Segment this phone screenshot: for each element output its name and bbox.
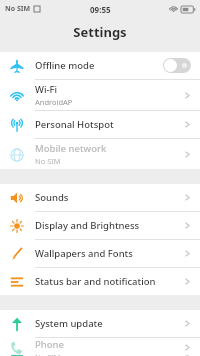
- staticText: Display and Brightness: [35, 219, 140, 232]
- button[interactable]: Personal Hotspot: [0, 111, 200, 139]
- staticText: Sounds: [35, 191, 69, 204]
- staticText: No SIM: [5, 4, 31, 14]
- staticText: Settings: [73, 23, 127, 41]
- staticText: No SIM: [35, 352, 61, 356]
- staticText: Wallpapers and Fonts: [35, 247, 133, 260]
- button[interactable]: System update: [0, 310, 200, 338]
- button[interactable]: Status bar and notification: [0, 268, 200, 295]
- staticText: Mobile network: [35, 142, 107, 155]
- button[interactable]: Sounds: [0, 184, 200, 212]
- staticText: Phone: [35, 338, 64, 351]
- button[interactable]: Wi-Fi: [0, 80, 200, 111]
- button[interactable]: Display and Brightness: [0, 212, 200, 240]
- staticText: System update: [35, 317, 103, 330]
- staticText: Personal Hotspot: [35, 118, 114, 131]
- staticText: 09:55: [90, 4, 111, 15]
- button[interactable]: Phone: [0, 338, 200, 356]
- staticText: Offline mode: [35, 59, 95, 72]
- button[interactable]: Offline mode: [0, 52, 200, 80]
- button[interactable]: Mobile network: [0, 139, 200, 169]
- button[interactable]: Wallpapers and Fonts: [0, 240, 200, 268]
- staticText: Status bar and notification: [35, 275, 156, 288]
- staticText: No SIM: [35, 156, 61, 166]
- staticText: Wi-Fi: [35, 83, 58, 96]
- staticText: AndroidAP: [35, 97, 73, 107]
- button[interactable]: Offline mode toggle: [163, 58, 191, 73]
